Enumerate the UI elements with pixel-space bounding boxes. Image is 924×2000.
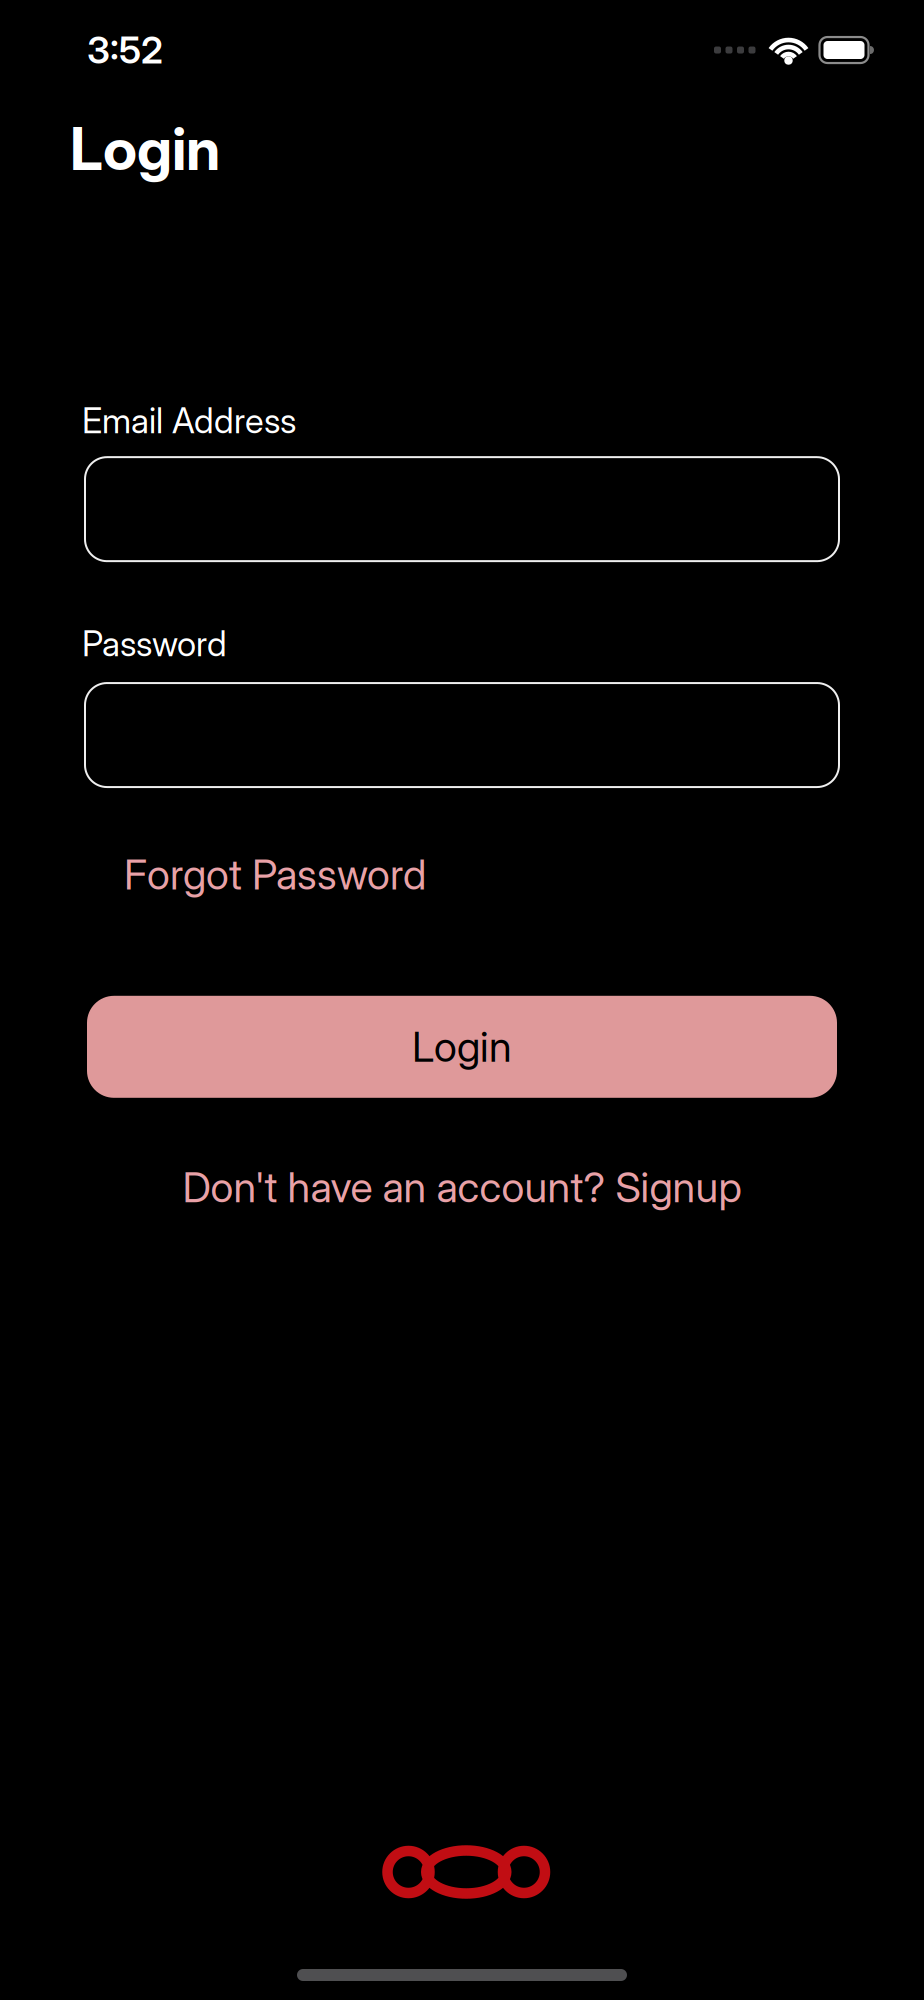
staticText: Forgot Password [124, 850, 426, 899]
button[interactable]: Email Address [85, 457, 839, 561]
staticText: Login [70, 114, 220, 183]
button[interactable]: Forgot Password [124, 850, 426, 899]
staticText: Login [412, 1022, 512, 1071]
button[interactable]: Don't have an account? Signup [182, 1163, 741, 1212]
staticText: Email Address [82, 400, 296, 441]
staticText: Password [82, 623, 227, 664]
button[interactable]: Login [87, 996, 837, 1098]
staticText: 3:52 [87, 28, 163, 72]
staticText: Don't have an account? Signup [182, 1163, 741, 1212]
button[interactable]: Password [85, 683, 839, 787]
